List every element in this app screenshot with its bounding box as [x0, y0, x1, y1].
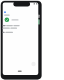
button[interactable]	[31, 61, 37, 67]
button[interactable]	[16, 69, 24, 73]
button[interactable]	[3, 10, 37, 16]
button[interactable]	[3, 17, 37, 23]
